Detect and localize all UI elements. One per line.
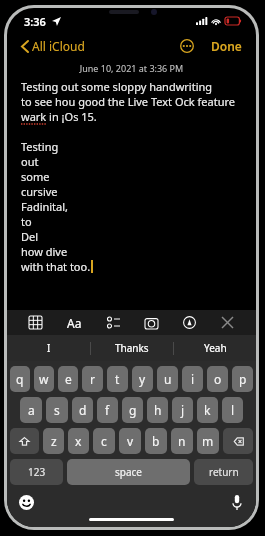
staticText: u xyxy=(164,371,172,387)
staticText: Fadinital, xyxy=(21,199,69,214)
staticText: m xyxy=(202,433,214,449)
button[interactable]: j xyxy=(172,397,193,423)
staticText: out xyxy=(21,154,39,169)
button[interactable]: e xyxy=(58,366,78,392)
staticText: j xyxy=(181,402,185,418)
button[interactable]: r xyxy=(82,366,103,392)
button[interactable]: Backspace xyxy=(223,428,253,454)
staticText: e xyxy=(65,371,72,387)
staticText: 3:36 xyxy=(24,14,46,29)
button[interactable]: i xyxy=(182,366,203,392)
staticText: s xyxy=(54,402,60,418)
staticText: Testing xyxy=(21,139,59,154)
staticText: y xyxy=(139,371,146,387)
staticText: x xyxy=(75,433,82,449)
button[interactable]: f xyxy=(97,397,118,423)
staticText: Aa xyxy=(67,315,82,331)
button[interactable]: space xyxy=(67,459,190,485)
staticText: t xyxy=(115,371,120,387)
button[interactable]: o xyxy=(207,366,228,392)
button[interactable]: Checklist xyxy=(104,313,123,332)
button[interactable]: t xyxy=(107,366,128,392)
staticText: how dive xyxy=(21,244,68,259)
staticText: Done xyxy=(211,38,242,54)
button[interactable]: Markup xyxy=(180,313,199,332)
staticText: k xyxy=(204,402,211,418)
staticText: to xyxy=(21,214,32,229)
staticText: Testing out some sloppy handwriting xyxy=(21,79,213,94)
button[interactable]: c xyxy=(93,428,115,454)
button[interactable]: h xyxy=(147,397,168,423)
button[interactable]: k xyxy=(197,397,218,423)
staticText: g xyxy=(129,402,137,418)
button[interactable]: Shift xyxy=(10,428,39,454)
button[interactable]: q xyxy=(10,366,30,392)
staticText: r xyxy=(90,371,95,387)
button[interactable]: return xyxy=(194,459,253,485)
staticText: w xyxy=(39,371,49,387)
button[interactable]: Camera xyxy=(142,313,161,332)
button[interactable]: u xyxy=(157,366,178,392)
staticText: b xyxy=(152,433,160,449)
button[interactable]: n xyxy=(171,428,193,454)
button[interactable]: l xyxy=(222,397,243,423)
staticText: June 10, 2021 at 3:36 PM xyxy=(21,62,242,74)
staticText: l xyxy=(231,402,235,418)
staticText: space xyxy=(115,465,142,479)
button[interactable]: More options xyxy=(178,37,196,55)
button[interactable]: I xyxy=(7,335,90,361)
staticText: return xyxy=(209,465,239,479)
button[interactable]: g xyxy=(122,397,143,423)
button[interactable]: Dictate xyxy=(232,495,242,510)
button[interactable]: Done xyxy=(209,36,244,56)
staticText: d xyxy=(79,402,87,418)
staticText: with that too. xyxy=(21,259,91,274)
button[interactable]: All iCloud xyxy=(19,35,88,57)
staticText: wark in ¡Os 15. xyxy=(21,109,97,124)
button[interactable]: Close keyboard xyxy=(218,313,237,332)
staticText: some xyxy=(21,169,50,184)
button[interactable]: z xyxy=(43,428,64,454)
staticText: a xyxy=(28,402,35,418)
staticText: Yeah xyxy=(204,341,227,355)
staticText: h xyxy=(154,402,162,418)
staticText: n xyxy=(178,433,186,449)
staticText: p xyxy=(239,371,247,387)
button[interactable]: b xyxy=(145,428,167,454)
button[interactable]: a xyxy=(20,397,42,423)
staticText: cursive xyxy=(21,184,58,199)
staticText: to see hou good the Live Text Ock featur… xyxy=(21,94,235,109)
button[interactable]: d xyxy=(72,397,93,423)
button[interactable]: Emoji xyxy=(19,495,34,510)
button[interactable]: Table xyxy=(26,313,45,332)
button[interactable]: y xyxy=(132,366,153,392)
button[interactable]: v xyxy=(119,428,141,454)
staticText: i xyxy=(191,371,195,387)
button[interactable]: w xyxy=(34,366,54,392)
staticText: I xyxy=(47,341,51,355)
button[interactable]: 123 xyxy=(10,459,63,485)
staticText: f xyxy=(105,402,110,418)
staticText: z xyxy=(51,433,57,449)
button[interactable]: p xyxy=(232,366,253,392)
staticText: v xyxy=(127,433,134,449)
staticText: Del xyxy=(21,229,39,244)
button[interactable]: m xyxy=(197,428,219,454)
staticText: All iCloud xyxy=(32,38,85,54)
button[interactable]: Aa xyxy=(64,312,85,334)
button[interactable]: x xyxy=(68,428,89,454)
staticText: 123 xyxy=(28,465,46,479)
button[interactable]: Yeah xyxy=(174,335,256,361)
staticText: q xyxy=(16,371,24,387)
staticText: Thanks xyxy=(115,341,149,355)
staticText: c xyxy=(101,433,107,449)
staticText: o xyxy=(214,371,222,387)
button[interactable]: Thanks xyxy=(91,335,173,361)
button[interactable]: s xyxy=(46,397,68,423)
